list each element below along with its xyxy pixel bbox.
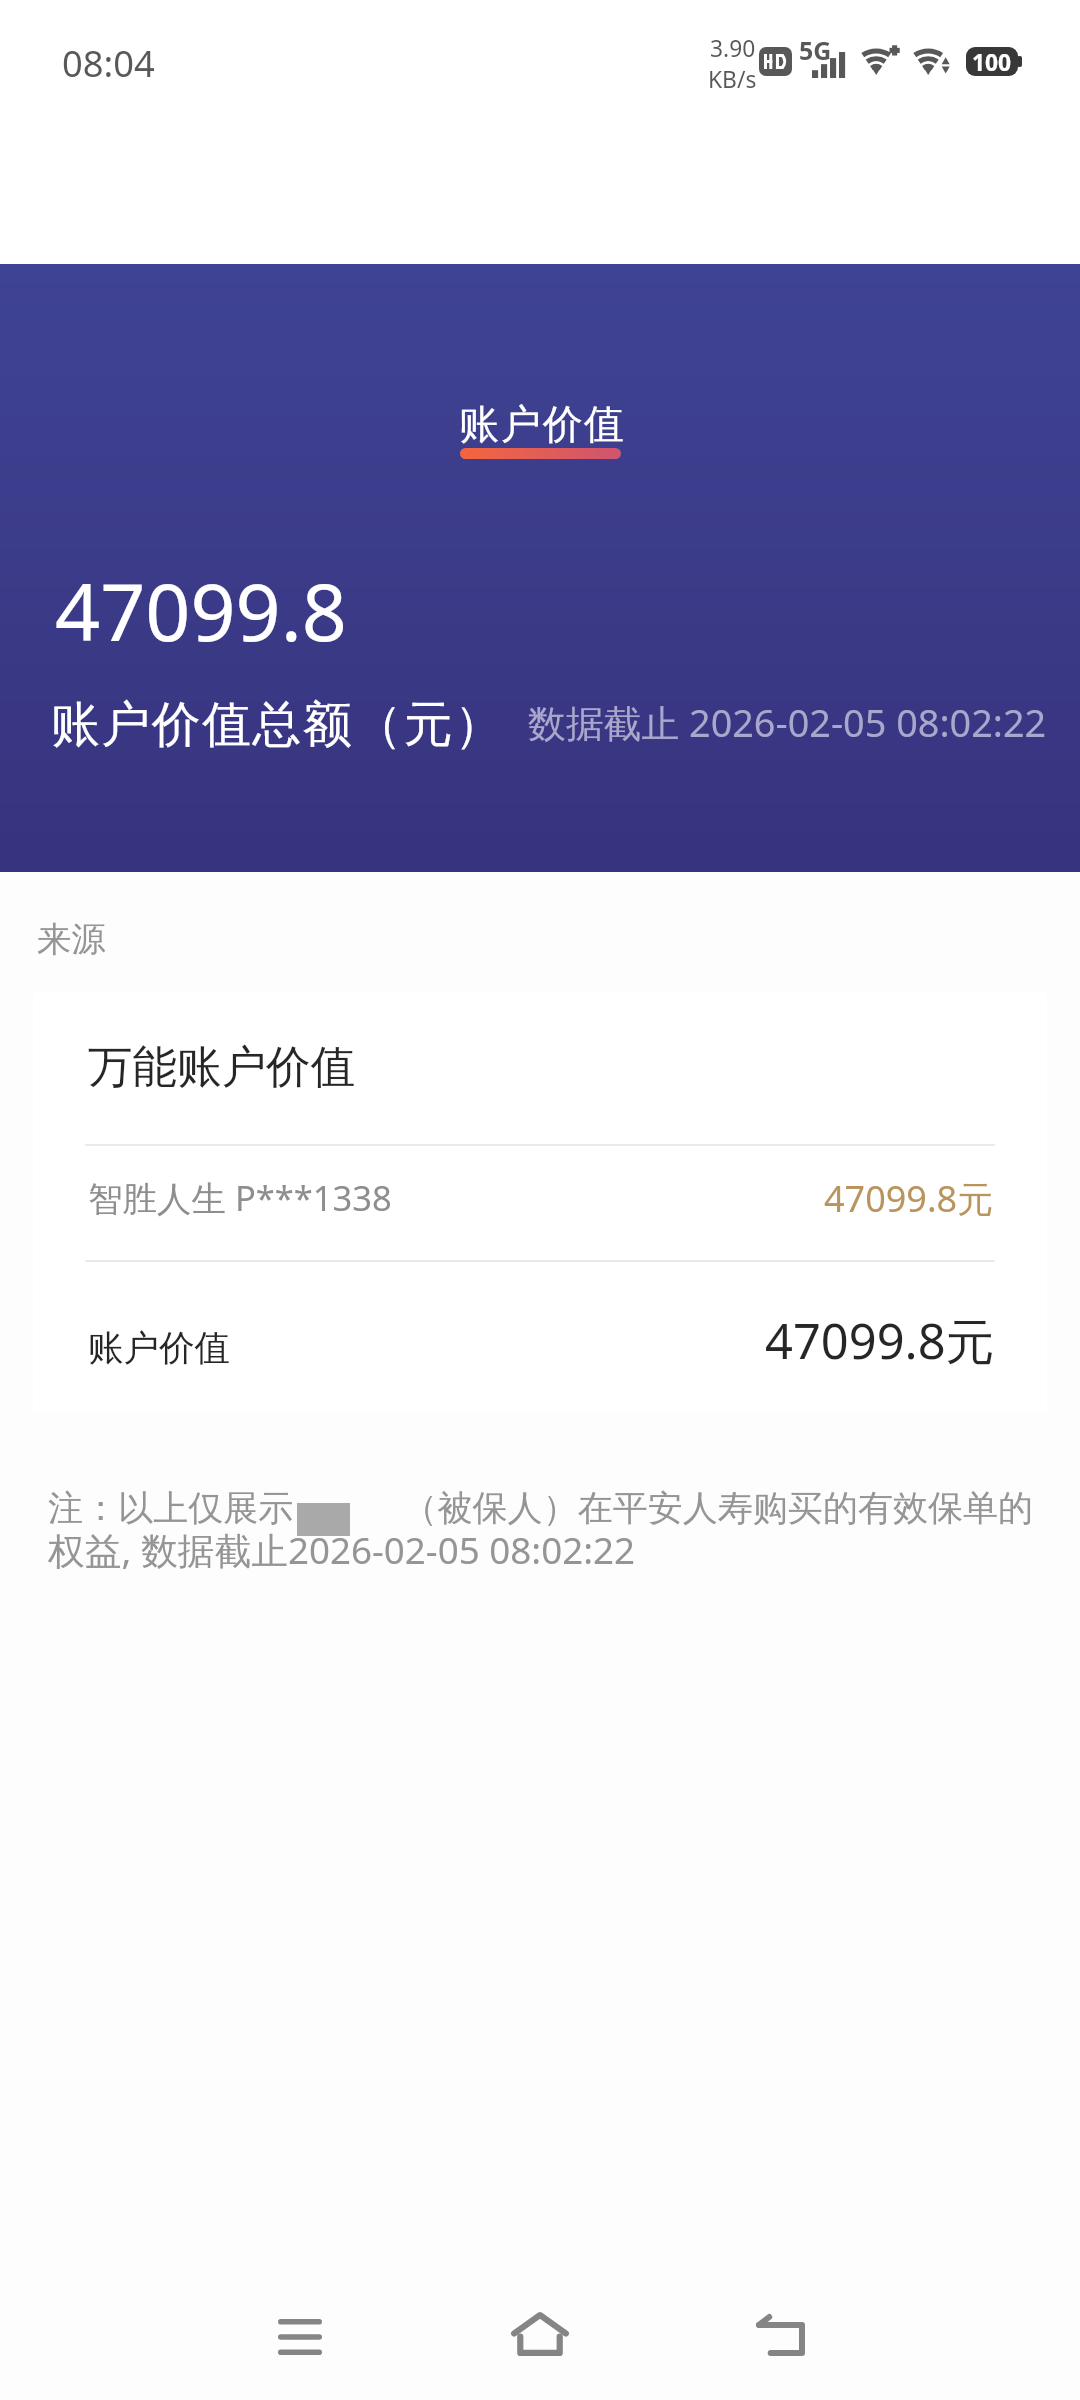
staticText: 47099.8元: [765, 1307, 995, 1374]
staticText: 47099.8: [55, 557, 347, 664]
staticText: 100: [972, 47, 1012, 76]
staticText: 来源: [37, 918, 106, 961]
staticText: 权益, 数据截止2026-02-05 08:02:22: [48, 1525, 636, 1575]
staticText: 万能账户价值: [88, 1039, 356, 1095]
button[interactable]: Home: [480, 2277, 600, 2397]
staticText: 08:04: [62, 38, 155, 87]
staticText: KB/s: [708, 64, 757, 95]
button[interactable]: Back: [720, 2277, 840, 2397]
staticText: 3.90: [710, 33, 756, 64]
staticText: 5G: [799, 33, 832, 67]
button[interactable]: 智胜人生 P***1338: [85, 1146, 995, 1260]
staticText: 账户价值: [88, 1326, 230, 1371]
staticText: 账户价值: [459, 399, 626, 450]
button[interactable]: 账户价值: [440, 384, 640, 474]
staticText: 账户价值总额（元）: [51, 694, 505, 756]
staticText: 47099.8元: [824, 1174, 994, 1223]
button[interactable]: Recents: [240, 2277, 360, 2397]
staticText: 注：以上仅展示 （被保人）在平安人寿购买的有效保单的: [48, 1483, 1034, 1531]
staticText: 数据截止 2026-02-05 08:02:22: [528, 697, 1047, 749]
staticText: 智胜人生 P***1338: [88, 1174, 392, 1221]
